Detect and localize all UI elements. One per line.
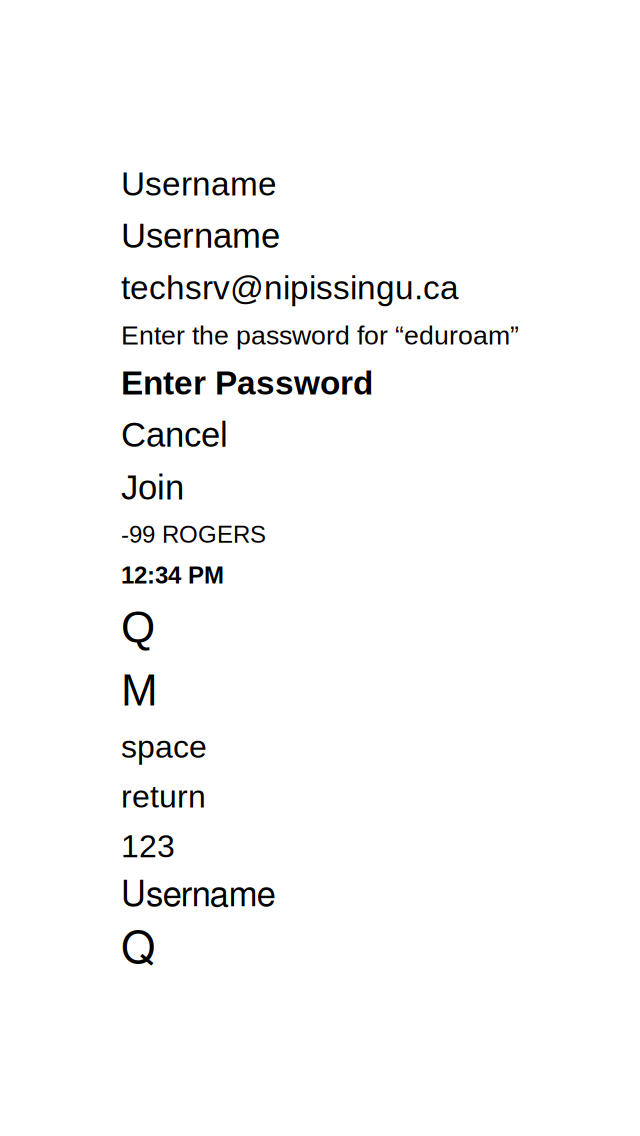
staticText: M (121, 666, 158, 715)
staticText: 12:34 PM (121, 562, 224, 588)
staticText: Username (121, 165, 277, 202)
staticText: Username (121, 878, 275, 913)
staticText: Username (121, 216, 280, 255)
staticText: Q (121, 927, 155, 971)
staticText: techsrv@nipissingu.ca (121, 269, 459, 306)
staticText: 123 (121, 828, 175, 864)
staticText: -99 ROGERS (121, 521, 266, 548)
staticText: space (121, 729, 207, 765)
staticText: Join (121, 468, 184, 507)
staticText: Enter Password (121, 364, 373, 401)
staticText: Q (121, 602, 155, 652)
staticText: return (121, 779, 206, 814)
staticText: Enter the password for “eduroam” (121, 320, 519, 350)
staticText: Cancel (121, 415, 228, 454)
